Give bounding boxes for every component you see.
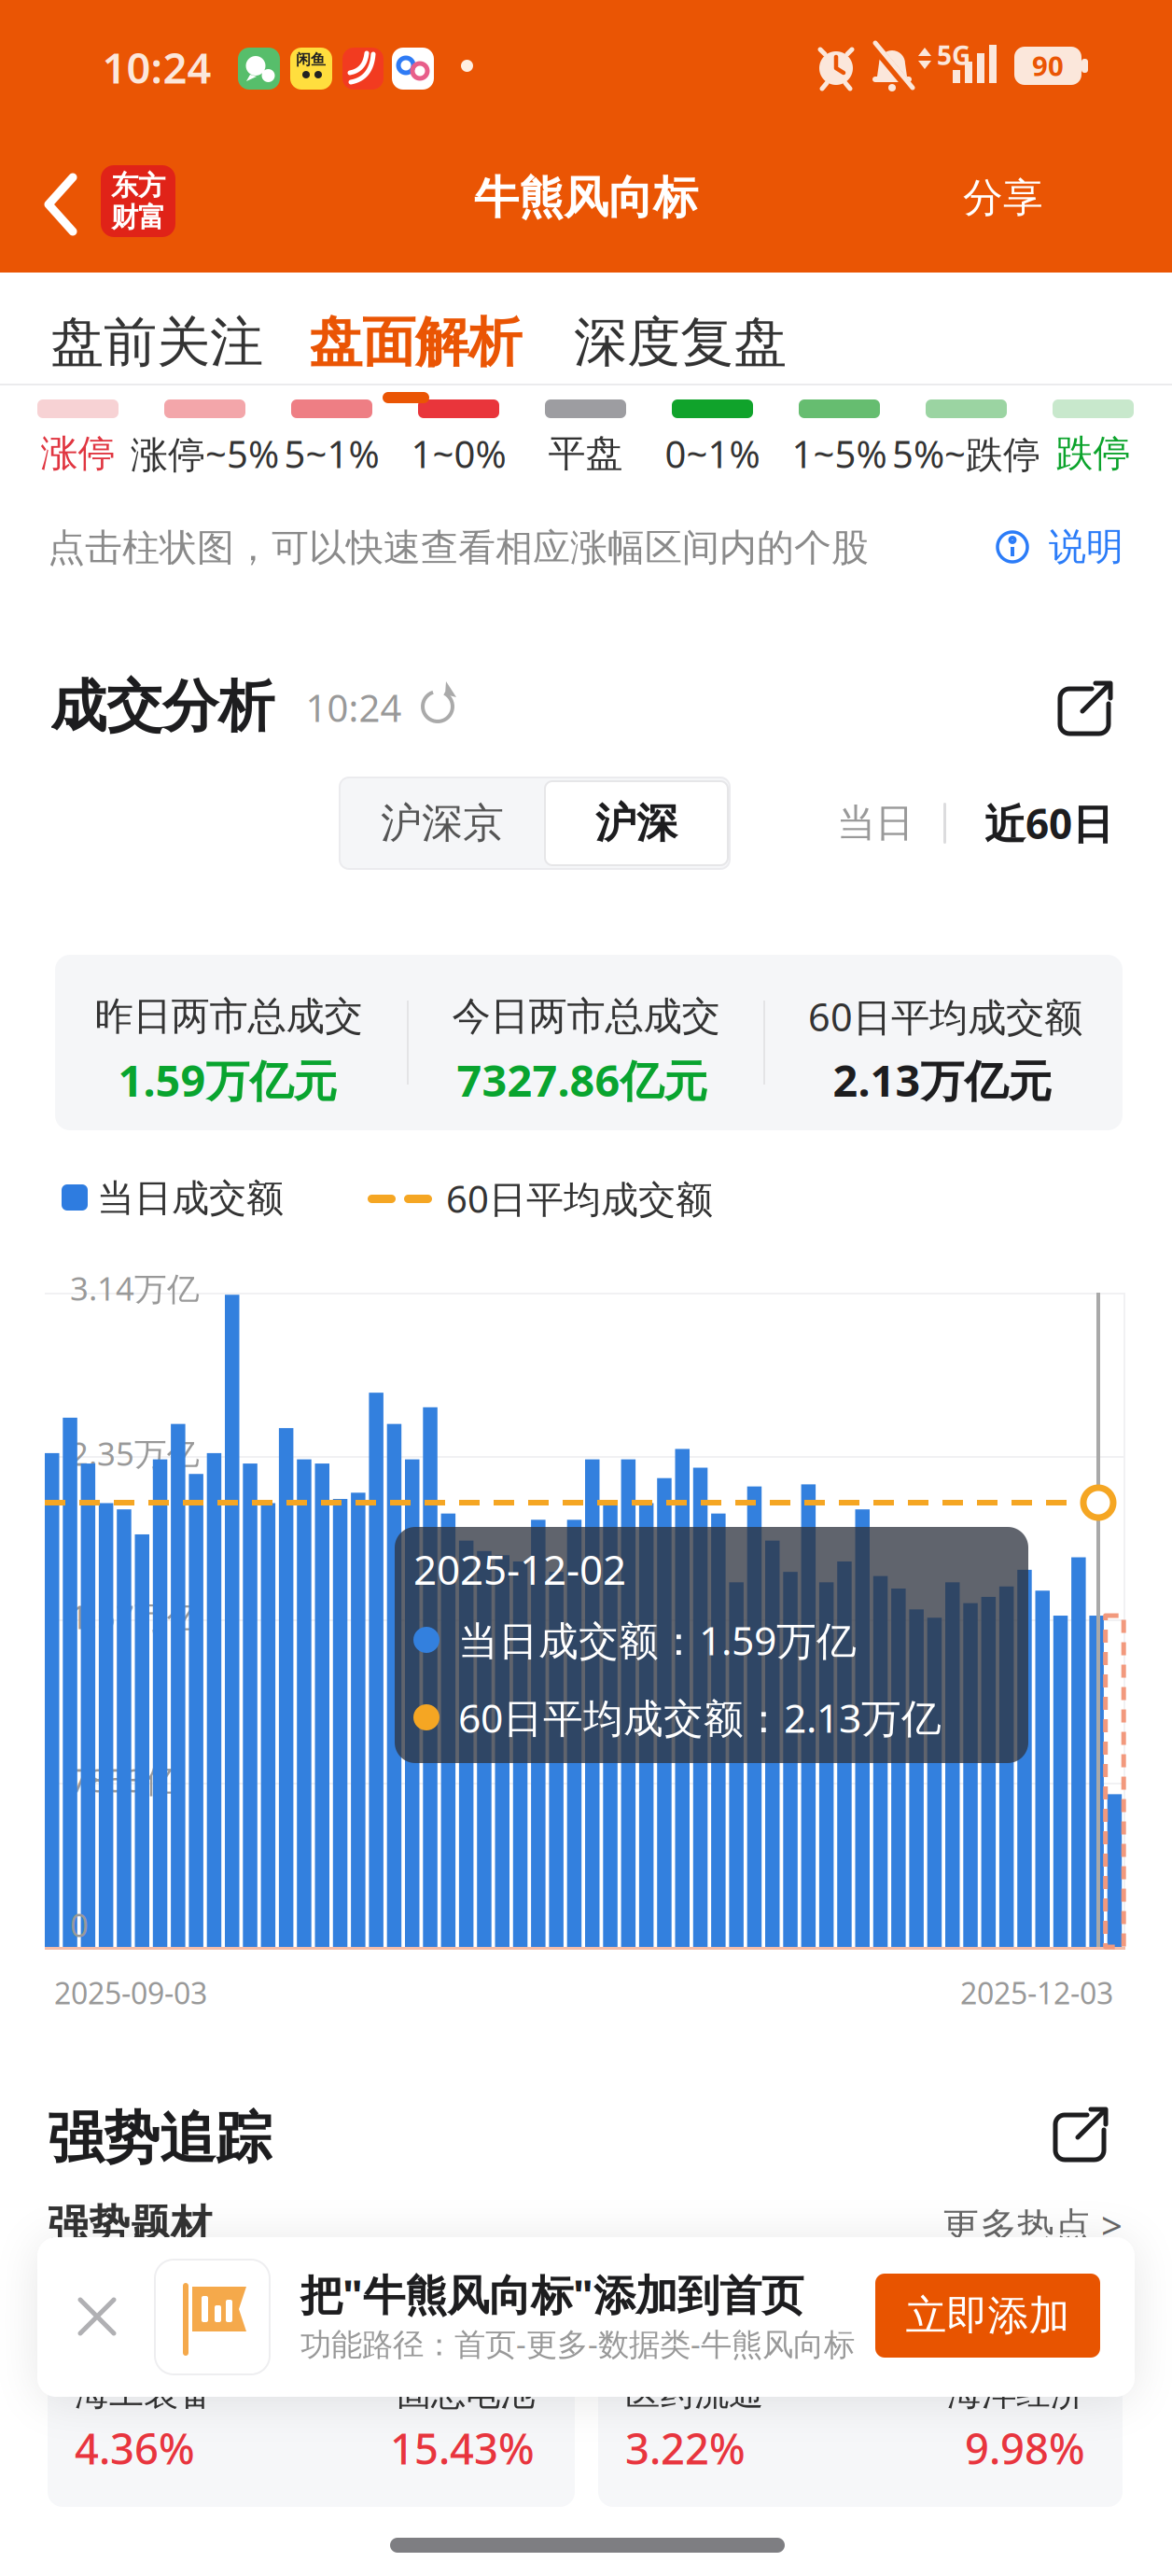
staticText: 闲鱼 [296, 51, 326, 69]
button[interactable]: 分享成交分析 [1060, 681, 1112, 735]
button[interactable]: 沪深 [545, 781, 728, 865]
staticText: 沪深 [595, 798, 677, 848]
staticText: 5~1% [284, 429, 379, 478]
button[interactable]: 东方财富 [101, 165, 175, 237]
staticText: 强势追踪 [48, 2104, 272, 2173]
staticText: 医药流通 [625, 2372, 763, 2415]
staticText: 90 [1032, 47, 1064, 84]
staticText: 60日平均成交额 [808, 991, 1082, 1042]
staticText: 更多热点 > [942, 2200, 1123, 2250]
staticText: 把"牛熊风向标"添加到首页 [300, 2266, 803, 2322]
staticText: 5G [937, 38, 970, 72]
staticText: 当日成交额 [97, 1175, 284, 1221]
staticText: 1~0% [411, 429, 506, 478]
button[interactable]: 近60日 [970, 786, 1128, 861]
button[interactable]: 关闭 [69, 2289, 125, 2345]
staticText: 跌停 [1056, 431, 1130, 476]
staticText: 2.35万亿 [70, 1432, 200, 1475]
staticText: 2025-09-03 [54, 1973, 207, 2013]
staticText: 立即添加 [906, 2290, 1070, 2341]
staticText: 平盘 [548, 431, 623, 476]
staticText: 7853亿 [70, 1758, 177, 1801]
staticText: 3.22% [625, 2420, 746, 2476]
button[interactable]: 当日 [819, 786, 931, 861]
staticText: 沪深京 [381, 798, 504, 848]
button[interactable]: 沪深京 [349, 781, 536, 865]
staticText: 10:24 [102, 39, 211, 95]
staticText: 深度复盘 [574, 310, 787, 375]
button[interactable]: 返回 [33, 167, 89, 242]
staticText: 1~5% [792, 429, 887, 478]
staticText: 点击柱状图，可以快速查看相应涨幅区间内的个股 [48, 525, 869, 571]
staticText: 涨停 [41, 431, 115, 476]
staticText: 海洋经济 [947, 2372, 1085, 2415]
button[interactable]: 刷新 [412, 679, 464, 732]
staticText: 5%~跌停 [892, 429, 1040, 478]
staticText: 盘前关注 [50, 310, 263, 375]
staticText: 分享 [963, 173, 1043, 222]
staticText: 强势题材 [48, 2200, 212, 2250]
button[interactable]: 深度复盘 [565, 298, 796, 387]
staticText: 60日平均成交额：2.13万亿 [458, 1691, 942, 1744]
staticText: 1.57万亿 [70, 1595, 200, 1638]
staticText: 昨日两市总成交 [95, 993, 363, 1040]
staticText: 成交分析 [50, 672, 274, 741]
button[interactable]: 盘前关注 [41, 298, 272, 387]
staticText: 功能路径：首页-更多-数据类-牛熊风向标 [300, 2323, 855, 2364]
staticText: 9.98% [965, 2420, 1085, 2476]
staticText: 牛熊风向标 [474, 170, 698, 225]
staticText: 涨停~5% [131, 429, 279, 478]
button[interactable]: 分享强势追踪 [1055, 2107, 1108, 2162]
staticText: 今日两市总成交 [452, 993, 720, 1040]
staticText: 近60日 [984, 796, 1113, 850]
button[interactable]: 更多热点 [917, 2199, 1123, 2251]
staticText: 0~1% [665, 429, 760, 478]
staticText: 当日 [837, 799, 914, 847]
staticText: 60日平均成交额 [446, 1174, 713, 1223]
staticText: 3.14万亿 [70, 1267, 200, 1309]
staticText: 海工装备 [75, 2372, 213, 2415]
staticText: 2025-12-03 [960, 1973, 1113, 2013]
staticText: 0 [70, 1903, 89, 1946]
staticText: 10:24 [306, 683, 402, 732]
staticText: 1.59万亿元 [118, 1051, 337, 1109]
staticText: 7327.86亿元 [457, 1051, 708, 1109]
staticText: 说明 [1049, 524, 1123, 570]
staticText: 15.43% [390, 2420, 535, 2476]
staticText: 固态电池 [397, 2372, 535, 2415]
staticText: 2025-12-02 [413, 1542, 626, 1596]
staticText: 当日成交额：1.59万亿 [458, 1613, 857, 1666]
staticText: 2.13万亿元 [833, 1051, 1052, 1109]
button[interactable]: 分享 [952, 167, 1054, 229]
staticText: 东方 [111, 169, 165, 203]
staticText: 盘面解析 [309, 310, 522, 375]
button[interactable]: 盘面解析 [300, 298, 531, 387]
button[interactable]: 立即添加 [875, 2274, 1100, 2358]
staticText: 4.36% [75, 2420, 195, 2476]
staticText: 财富 [111, 201, 165, 234]
button[interactable]: 说明 [995, 521, 1125, 573]
